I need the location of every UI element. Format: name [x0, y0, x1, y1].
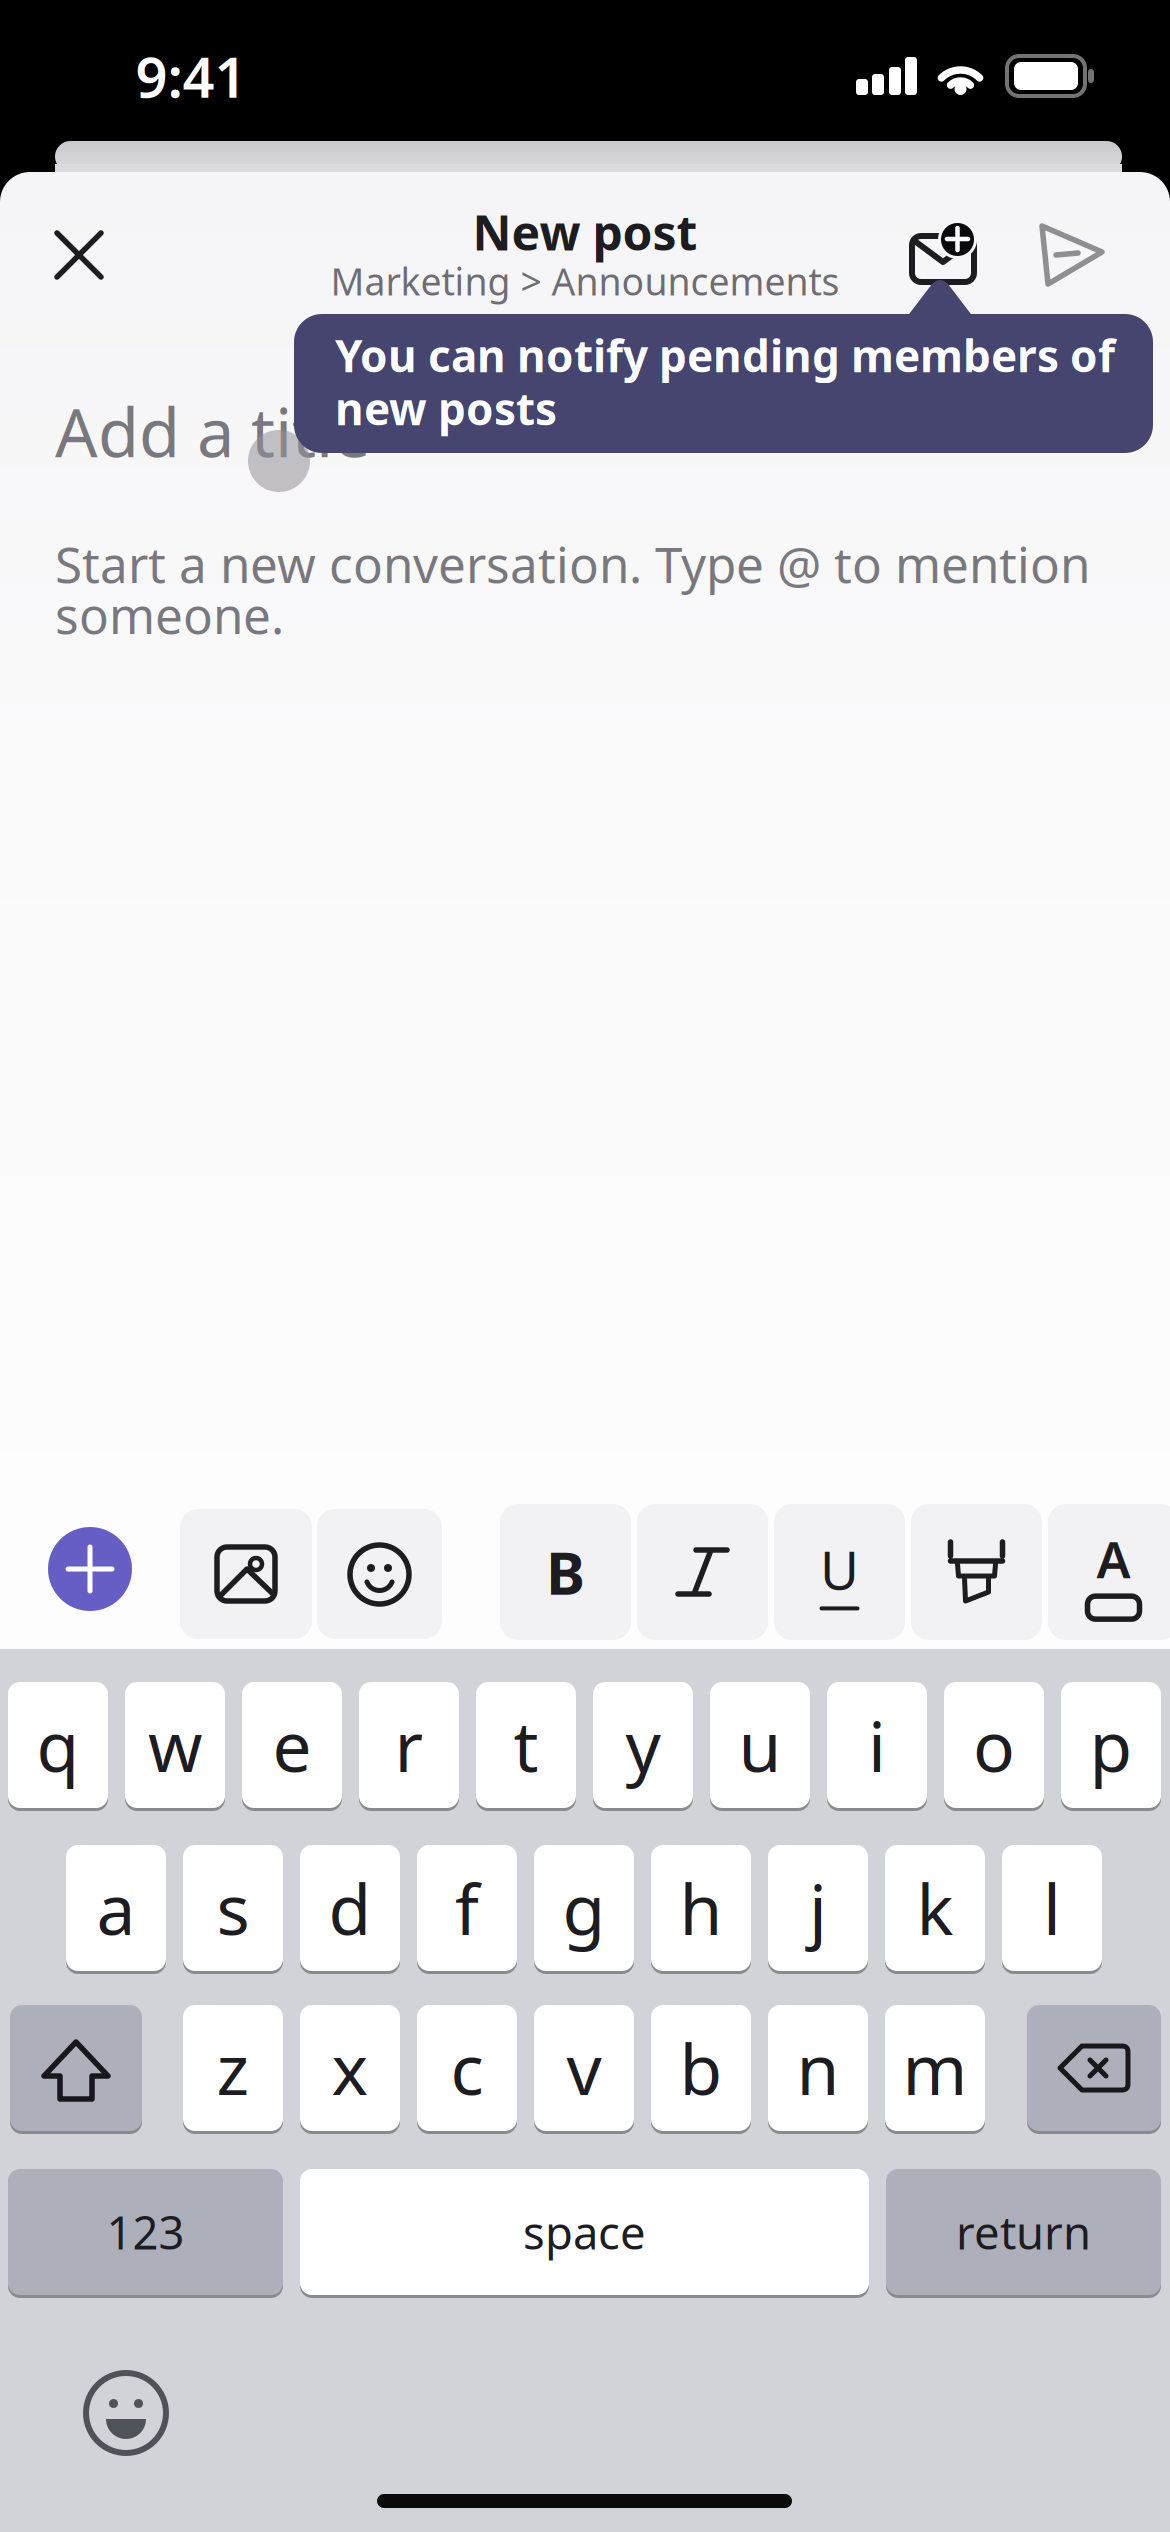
staticText: h [679, 1862, 722, 1954]
staticText: e [272, 1699, 311, 1791]
button[interactable]: p [1061, 1682, 1161, 1808]
button[interactable]: j [768, 1845, 868, 1971]
button[interactable]: Insert emoji [317, 1509, 442, 1639]
staticText: i [868, 1699, 886, 1791]
button[interactable]: a [66, 1845, 166, 1971]
button[interactable]: Shift [10, 2005, 142, 2131]
staticText: space [523, 2202, 646, 2262]
button[interactable]: i [827, 1682, 927, 1808]
staticText: s [216, 1862, 249, 1954]
staticText: A [1096, 1525, 1130, 1592]
staticText: m [902, 2022, 967, 2114]
staticText: Add a title [55, 387, 371, 475]
button[interactable]: Delete [1027, 2005, 1161, 2131]
button[interactable]: u [710, 1682, 810, 1808]
staticText: g [562, 1862, 605, 1954]
staticText: B [546, 1533, 585, 1611]
staticText: p [1089, 1699, 1132, 1791]
button[interactable]: Emoji keyboard [86, 2373, 166, 2453]
button[interactable]: r [359, 1682, 459, 1808]
button[interactable]: return [886, 2169, 1161, 2295]
button[interactable]: w [125, 1682, 225, 1808]
staticText: a [96, 1862, 135, 1954]
staticText: v [566, 2022, 601, 2114]
staticText: 9:41 [135, 39, 246, 113]
button[interactable]: Close [24, 200, 134, 310]
button[interactable]: space [300, 2169, 869, 2295]
button[interactable]: e [242, 1682, 342, 1808]
staticText: r [394, 1699, 423, 1791]
staticText: return [956, 2202, 1091, 2262]
button[interactable]: q [8, 1682, 108, 1808]
button[interactable]: g [534, 1845, 634, 1971]
staticText: y [625, 1699, 660, 1791]
button[interactable]: Add [48, 1527, 132, 1611]
staticText: q [36, 1699, 79, 1791]
button[interactable]: Highlight [911, 1504, 1042, 1640]
button[interactable]: b [651, 2005, 751, 2131]
button[interactable]: Italic [637, 1504, 768, 1640]
button[interactable]: Underline [774, 1504, 905, 1640]
button[interactable]: y [593, 1682, 693, 1808]
button[interactable]: Insert image [180, 1509, 312, 1639]
staticText: new posts [335, 379, 557, 437]
button[interactable]: l [1002, 1845, 1102, 1971]
button[interactable]: o [944, 1682, 1044, 1808]
staticText: k [916, 1862, 953, 1954]
staticText: You can notify pending members of [335, 326, 1115, 384]
button[interactable]: Send [1038, 222, 1108, 288]
staticText: f [455, 1862, 479, 1954]
staticText: U [820, 1534, 859, 1604]
button[interactable]: k [885, 1845, 985, 1971]
staticText: w [148, 1699, 202, 1791]
button[interactable]: Notify members [908, 222, 978, 286]
staticText: b [679, 2022, 722, 2114]
staticText: u [738, 1699, 781, 1791]
button[interactable]: h [651, 1845, 751, 1971]
staticText: someone. [55, 582, 284, 647]
staticText: New post [472, 200, 697, 264]
staticText: 123 [106, 2202, 184, 2262]
staticText: Marketing > Announcements [330, 256, 839, 306]
staticText: x [331, 2022, 368, 2114]
staticText: o [973, 1699, 1015, 1791]
button[interactable]: d [300, 1845, 400, 1971]
button[interactable]: v [534, 2005, 634, 2131]
button[interactable]: x [300, 2005, 400, 2131]
staticText: d [328, 1862, 371, 1954]
staticText: l [1043, 1862, 1061, 1954]
staticText: j [809, 1862, 827, 1954]
button[interactable]: 123 [8, 2169, 283, 2295]
button[interactable]: m [885, 2005, 985, 2131]
staticText: z [216, 2022, 249, 2114]
staticText: t [513, 1699, 538, 1791]
button[interactable]: Bold [500, 1504, 631, 1640]
staticText: c [450, 2022, 483, 2114]
button[interactable]: f [417, 1845, 517, 1971]
button[interactable]: s [183, 1845, 283, 1971]
button[interactable]: t [476, 1682, 576, 1808]
button[interactable]: z [183, 2005, 283, 2131]
button[interactable]: c [417, 2005, 517, 2131]
staticText: Start a new conversation. Type @ to ment… [55, 531, 1090, 596]
button[interactable]: n [768, 2005, 868, 2131]
button[interactable]: Font color [1048, 1504, 1170, 1640]
staticText: n [796, 2022, 839, 2114]
